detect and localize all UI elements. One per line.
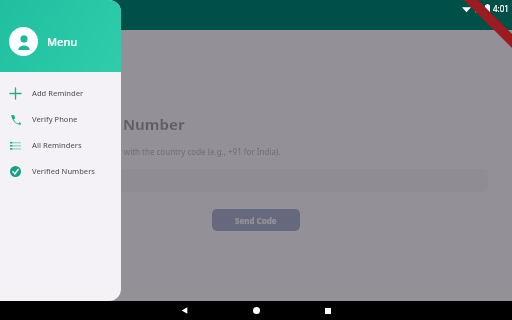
staticText: All Reminders bbox=[32, 140, 82, 150]
staticText: Verified Numbers bbox=[32, 166, 95, 176]
staticText: Verify Phone Number bbox=[24, 114, 185, 134]
button[interactable]: Home bbox=[238, 301, 274, 320]
staticText: Enter your phone number with the country… bbox=[24, 146, 281, 157]
button[interactable]: Verified Numbers bbox=[0, 158, 121, 184]
button[interactable]: Send Code bbox=[212, 209, 300, 231]
button[interactable]: Recents bbox=[310, 301, 346, 320]
button[interactable]: Verify Phone bbox=[0, 106, 121, 132]
button[interactable] bbox=[24, 169, 488, 192]
button[interactable]: Add Reminder bbox=[0, 80, 121, 106]
staticText: Add Reminder bbox=[32, 88, 84, 98]
staticText: Send Code bbox=[235, 215, 277, 226]
button[interactable]: Back bbox=[166, 301, 202, 320]
staticText: Verify Phone bbox=[32, 114, 78, 124]
button[interactable]: All Reminders bbox=[0, 132, 121, 158]
button[interactable] bbox=[0, 30, 512, 301]
staticText: 4:01 bbox=[493, 3, 509, 14]
staticText: Menu bbox=[47, 34, 78, 49]
